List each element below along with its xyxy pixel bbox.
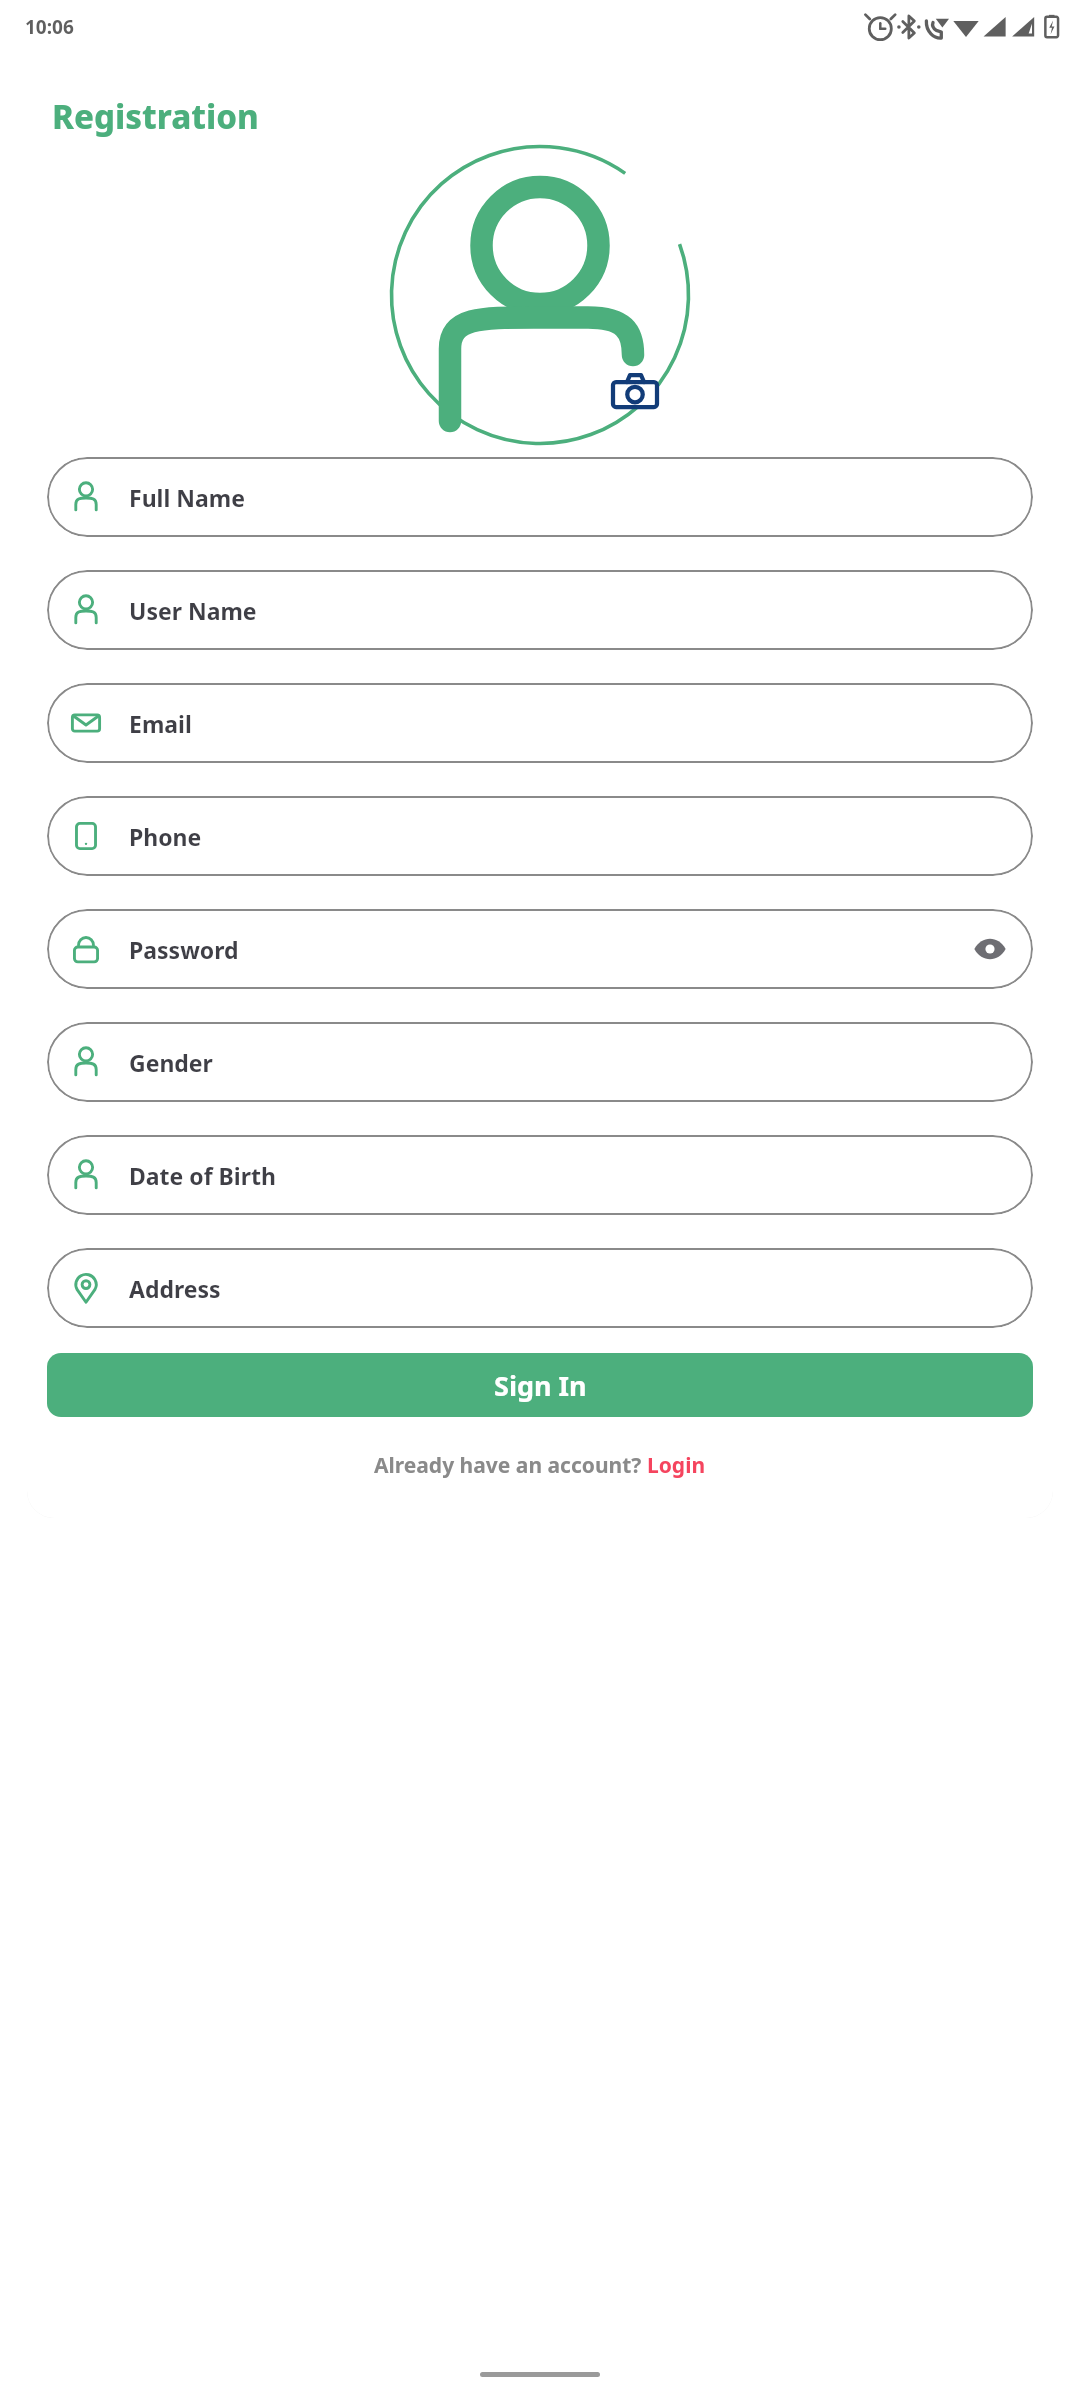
staticText: Address xyxy=(129,1273,221,1304)
staticText: Full Name xyxy=(129,482,245,513)
button[interactable]: Address xyxy=(47,1248,1033,1328)
button[interactable]: Phone xyxy=(47,796,1033,876)
staticText: Registration xyxy=(52,94,259,139)
staticText: Login xyxy=(647,1451,706,1480)
button[interactable]: Sign In xyxy=(47,1353,1033,1417)
button[interactable]: Email xyxy=(47,683,1033,763)
button[interactable]: Date of Birth xyxy=(47,1135,1033,1215)
button[interactable]: Change profile photo xyxy=(390,145,690,445)
button[interactable]: Gender xyxy=(47,1022,1033,1102)
staticText: Date of Birth xyxy=(129,1160,276,1191)
staticText: Gender xyxy=(129,1047,213,1078)
button[interactable]: Already have an account? xyxy=(47,1451,1033,1480)
other: Show password xyxy=(973,932,1007,966)
staticText: User Name xyxy=(129,595,257,626)
button[interactable]: Full Name xyxy=(47,457,1033,537)
staticText: Phone xyxy=(129,821,202,852)
staticText: 10:06 xyxy=(25,14,74,40)
staticText: Already have an account? xyxy=(374,1451,647,1480)
staticText: Sign In xyxy=(494,1367,587,1404)
button[interactable]: User Name xyxy=(47,570,1033,650)
staticText: Email xyxy=(129,708,192,739)
button[interactable]: Password xyxy=(47,909,1033,989)
staticText: Password xyxy=(129,934,239,965)
